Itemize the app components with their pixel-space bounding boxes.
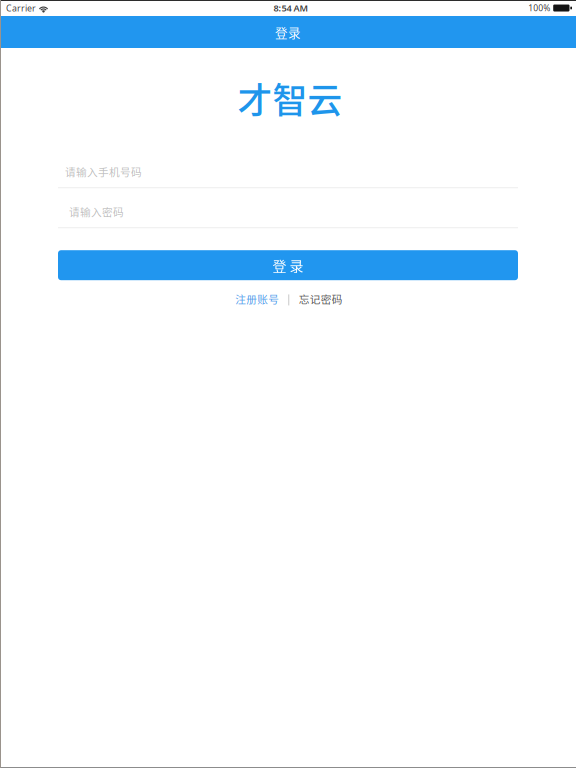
staticText: 忘记密码 [299, 291, 343, 307]
staticText: 请输入手机号码 [65, 164, 142, 179]
button[interactable]: 忘记密码 [296, 291, 346, 307]
staticText: 注册账号 [235, 291, 279, 307]
button[interactable]: 请输入手机号码 [58, 156, 518, 188]
button[interactable]: 请输入密码 [58, 196, 518, 228]
staticText: Carrier [6, 2, 36, 14]
staticText: 登 录 [272, 255, 303, 275]
staticText: 100% [528, 2, 550, 14]
button[interactable]: 注册账号 [232, 291, 282, 307]
staticText: 才智云 [237, 73, 342, 123]
staticText: 登录 [275, 23, 301, 41]
button[interactable]: 登 录 [0, 250, 576, 280]
staticText: 8:54 AM [273, 2, 308, 14]
staticText: 请输入密码 [69, 204, 124, 219]
